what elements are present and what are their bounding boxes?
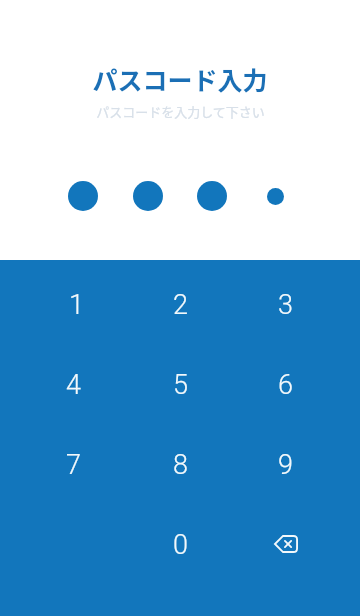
staticText: 0 <box>173 529 188 561</box>
button[interactable]: 0 <box>120 505 240 585</box>
staticText: 1 <box>69 289 84 321</box>
staticText: 7 <box>66 449 81 481</box>
staticText: パスコード入力 <box>92 61 268 97</box>
staticText: 8 <box>173 449 188 481</box>
staticText: パスコードを入力して下さい <box>96 102 265 121</box>
button[interactable]: 8 <box>120 425 240 505</box>
staticText: 5 <box>173 369 188 401</box>
staticText: 4 <box>66 369 81 401</box>
button[interactable]: 5 <box>120 345 240 425</box>
button[interactable]: 2 <box>120 265 240 345</box>
button[interactable]: 6 <box>240 345 360 425</box>
button[interactable]: 9 <box>240 425 360 505</box>
staticText: 6 <box>278 369 293 401</box>
button[interactable]: 7 <box>0 425 120 505</box>
button[interactable]: 1 <box>0 265 120 345</box>
button[interactable]: 3 <box>240 265 360 345</box>
staticText: 2 <box>173 289 188 321</box>
button[interactable]: Delete <box>240 505 360 585</box>
button[interactable]: 4 <box>0 345 120 425</box>
staticText: 3 <box>278 289 293 321</box>
staticText: 9 <box>278 449 293 481</box>
